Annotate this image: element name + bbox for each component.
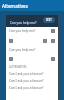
staticText: Can you help me?	[9, 48, 36, 52]
staticText: Can I ask you a favour?	[9, 86, 44, 90]
staticText: EDIT	[46, 18, 52, 22]
staticText: ALTERNATIVES	[9, 65, 27, 69]
staticText: Can I ask you a favour?	[9, 72, 44, 76]
staticText: Can you help me?	[9, 29, 36, 33]
button[interactable]: EDIT	[46, 18, 52, 22]
staticText: Can you help me?	[10, 21, 37, 25]
staticText: Alternatives	[2, 3, 28, 9]
staticText: Can I ask you a favour?	[9, 79, 44, 83]
